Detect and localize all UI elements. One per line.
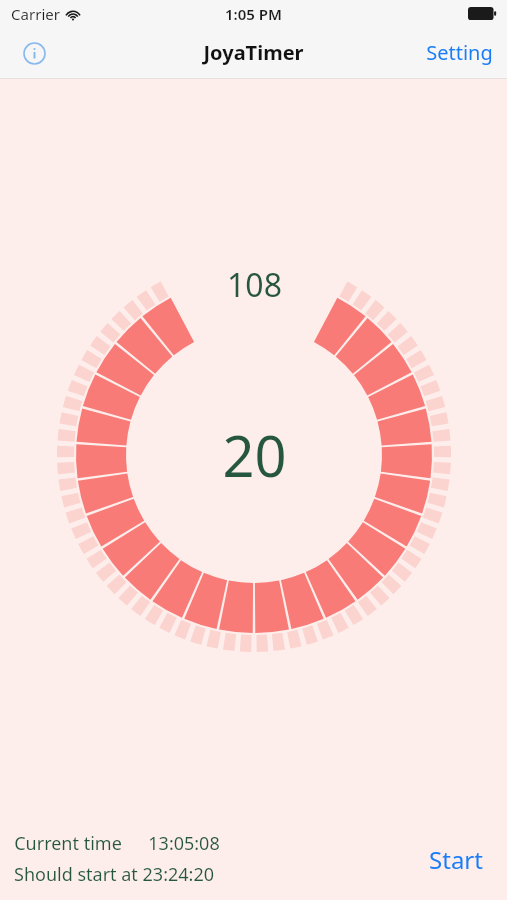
staticText: Should start at 23:24:20 xyxy=(14,862,214,887)
staticText: 13:05:08 xyxy=(148,831,220,856)
staticText: Start xyxy=(429,843,483,876)
staticText: Setting xyxy=(426,39,493,66)
staticText: Carrier xyxy=(11,4,60,24)
staticText: Current time xyxy=(14,831,122,856)
staticText: 20 xyxy=(222,417,287,493)
staticText: 108 xyxy=(227,263,282,307)
button[interactable]: Setting xyxy=(422,33,497,72)
staticText: 1:05 PM xyxy=(225,4,282,24)
button[interactable]: Start xyxy=(423,837,489,882)
button[interactable]: Info xyxy=(12,31,56,75)
staticText: JoyaTimer xyxy=(203,39,304,66)
